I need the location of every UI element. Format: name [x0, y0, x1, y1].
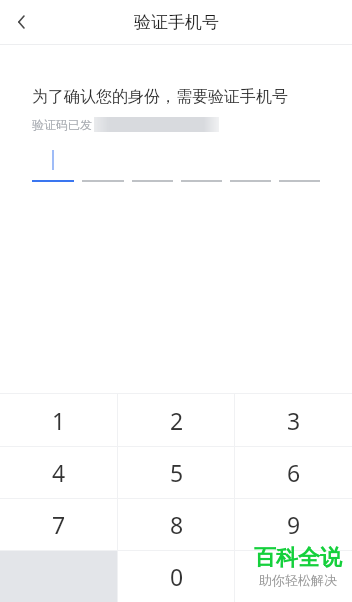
- staticText: 8: [170, 509, 184, 540]
- button[interactable]: 9: [235, 499, 352, 550]
- button[interactable]: 4: [0, 447, 118, 498]
- button[interactable]: 6: [235, 447, 352, 498]
- button[interactable]: 5: [118, 447, 235, 498]
- button[interactable]: [230, 146, 271, 182]
- button[interactable]: [279, 146, 320, 182]
- staticText: 7: [52, 509, 66, 540]
- button[interactable]: Delete: [235, 551, 352, 602]
- staticText: 5: [170, 457, 184, 488]
- button[interactable]: [82, 146, 124, 182]
- staticText: 百科全说: [254, 544, 342, 572]
- button[interactable]: 0: [118, 551, 235, 602]
- button[interactable]: 7: [0, 499, 118, 550]
- staticText: 助你轻松解决: [259, 572, 337, 588]
- button[interactable]: 3: [235, 394, 352, 446]
- button[interactable]: 2: [118, 394, 235, 446]
- staticText: 为了确认您的身份，需要验证手机号: [32, 87, 288, 107]
- staticText: 验证码已发: [32, 117, 92, 132]
- button[interactable]: Back: [0, 0, 44, 44]
- staticText: 验证手机号: [134, 12, 219, 33]
- button[interactable]: 8: [118, 499, 235, 550]
- button[interactable]: [32, 146, 74, 182]
- staticText: 0: [170, 561, 184, 592]
- button[interactable]: [132, 146, 173, 182]
- staticText: 2: [170, 405, 184, 436]
- staticText: 6: [287, 457, 301, 488]
- staticText: 3: [287, 405, 301, 436]
- staticText: 1: [52, 405, 66, 436]
- button[interactable]: [181, 146, 222, 182]
- staticText: 9: [287, 509, 301, 540]
- staticText: 4: [52, 457, 66, 488]
- button[interactable]: 1: [0, 394, 118, 446]
